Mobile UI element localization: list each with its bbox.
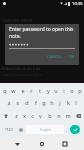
staticText: q [3,87,7,94]
button[interactable]: g [40,96,48,109]
button[interactable]: j [56,96,64,109]
button[interactable]: o [68,84,76,96]
button[interactable]: Shift [0,109,12,122]
staticText: v [39,112,42,119]
button[interactable]: Enter [70,125,80,134]
button[interactable]: f [31,96,40,109]
staticText: r [30,87,33,94]
staticText: OK [69,54,75,59]
staticText: . [66,127,68,133]
staticText: j [59,99,61,106]
button[interactable]: s [13,96,22,109]
button[interactable]: m [63,109,72,122]
button[interactable]: Period [64,125,70,134]
button[interactable]: a [4,96,13,109]
button[interactable]: Home [36,138,48,150]
button[interactable]: ?123 [0,125,18,134]
button[interactable]: w [9,84,18,96]
button[interactable]: CANCEL [45,52,64,61]
staticText: g [42,99,46,106]
button[interactable]: h [48,96,56,109]
staticText: Enter password to open this note. [9,26,75,39]
staticText: a [7,99,11,106]
staticText: d [25,99,29,106]
staticText: Secret note [3,16,33,23]
button[interactable]: Recents [59,138,71,150]
staticText: o [70,87,74,94]
staticText: ••••••• [9,41,29,49]
button[interactable]: e [18,84,27,96]
staticText: t [39,87,41,94]
button[interactable]: y [44,84,52,96]
button[interactable]: r [27,84,36,96]
button[interactable]: c [28,109,36,122]
staticText: f [35,99,37,106]
staticText: w [11,87,16,94]
staticText: b [48,112,52,119]
staticText: u [54,87,58,94]
button[interactable]: Backspace [72,109,84,122]
staticText: m [65,112,71,119]
button[interactable]: l [72,96,80,109]
staticText: e [21,87,25,94]
button[interactable]: d [22,96,31,109]
button[interactable]: Space [26,125,64,134]
button[interactable]: u [52,84,60,96]
staticText: something written here [2,72,42,77]
staticText: 10:35 [72,1,83,7]
staticText: y [47,87,50,94]
button[interactable]: i [60,84,68,96]
staticText: h [50,99,54,106]
button[interactable]: OK [66,52,78,61]
button[interactable]: p [76,84,84,96]
staticText: c [31,112,34,119]
staticText: z [15,112,18,119]
staticText: i [63,87,65,94]
button[interactable]: n [54,109,63,122]
staticText: k [67,99,70,106]
staticText: CANCEL [47,54,62,59]
button[interactable]: t [36,84,44,96]
button[interactable]: v [36,109,45,122]
button[interactable]: x [20,109,28,122]
staticText: s [16,99,19,106]
staticText: n [57,112,61,119]
button[interactable]: b [45,109,54,122]
staticText: English [40,128,51,132]
button[interactable]: Comma [18,125,24,134]
button[interactable]: q [0,84,9,96]
button[interactable]: k [64,96,72,109]
button[interactable]: Back [11,138,23,150]
button[interactable]: z [12,109,20,122]
staticText: ?123 [5,127,13,132]
staticText: l [75,99,77,106]
staticText: Video title auto title [2,66,41,72]
staticText: p [78,87,82,94]
staticText: x [23,112,26,119]
